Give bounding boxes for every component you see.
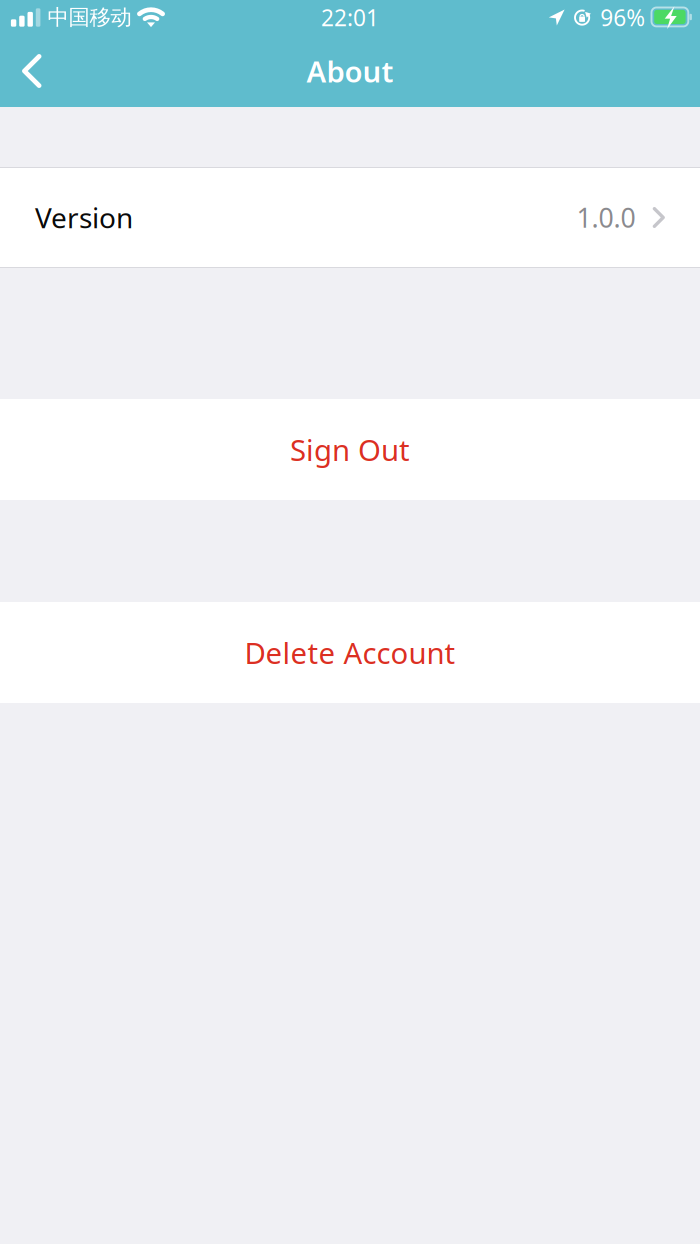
staticText: Sign Out: [290, 430, 410, 469]
staticText: Version: [35, 199, 133, 236]
staticText: 22:01: [321, 2, 379, 32]
staticText: About: [306, 51, 393, 90]
button[interactable]: Sign Out: [0, 399, 700, 500]
button[interactable]: Back: [0, 39, 64, 103]
button[interactable]: Delete Account: [0, 602, 700, 703]
staticText: 96%: [600, 2, 645, 32]
staticText: 1.0.0: [577, 200, 636, 235]
staticText: 中国移动: [47, 4, 131, 31]
button[interactable]: Version: [0, 167, 700, 268]
staticText: Delete Account: [244, 633, 455, 672]
